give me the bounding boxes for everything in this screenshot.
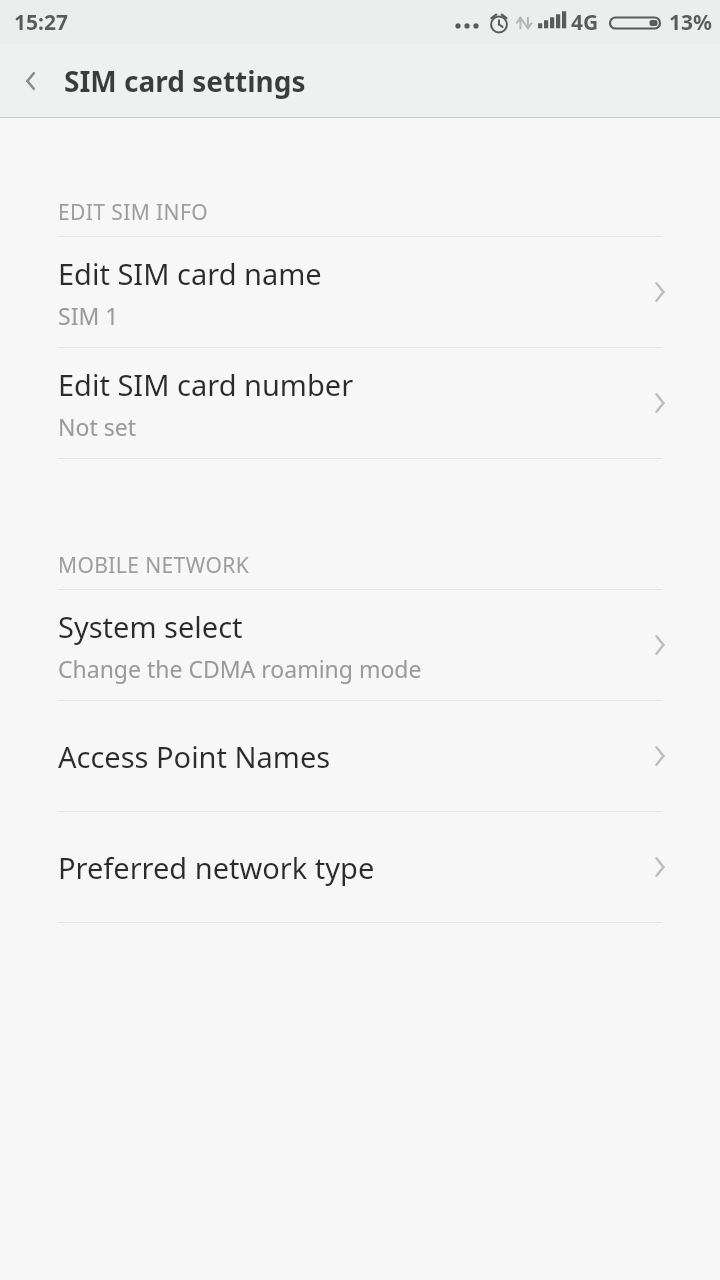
staticText: SIM 1: [58, 300, 119, 331]
button[interactable]: Back: [0, 44, 64, 117]
button[interactable]: Access Point Names: [0, 701, 720, 811]
staticText: MOBILE NETWORK: [58, 551, 250, 580]
staticText: 13%: [669, 8, 712, 37]
button[interactable]: System select: [0, 590, 720, 700]
staticText: System select: [58, 607, 243, 646]
staticText: SIM card settings: [64, 62, 306, 100]
button[interactable]: Preferred network type: [0, 812, 720, 922]
staticText: EDIT SIM INFO: [58, 198, 208, 227]
button[interactable]: Edit SIM card number: [0, 348, 720, 458]
staticText: Preferred network type: [58, 848, 648, 887]
staticText: Edit SIM card name: [58, 254, 322, 293]
staticText: 4G: [571, 8, 599, 37]
button[interactable]: Edit SIM card name: [0, 237, 720, 347]
staticText: Not set: [58, 411, 136, 442]
staticText: Edit SIM card number: [58, 365, 354, 404]
staticText: Change the CDMA roaming mode: [58, 653, 422, 684]
staticText: Access Point Names: [58, 737, 648, 776]
staticText: 15:27: [14, 8, 68, 37]
